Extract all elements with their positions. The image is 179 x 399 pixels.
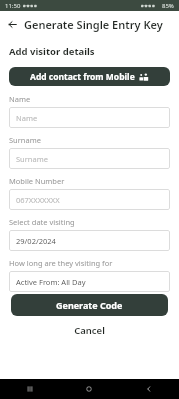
staticText: Generate Code bbox=[56, 299, 123, 311]
button[interactable]: Recents bbox=[0, 379, 59, 399]
staticText: Surname bbox=[16, 154, 48, 164]
staticText: Name bbox=[9, 94, 31, 104]
button[interactable]: Generate Code bbox=[11, 294, 168, 316]
staticText: Select date visiting bbox=[9, 217, 75, 227]
button[interactable]: 29/02/2024 bbox=[9, 230, 170, 251]
button[interactable]: Active From: All Day bbox=[9, 271, 170, 292]
button[interactable]: Surname bbox=[9, 148, 170, 169]
staticText: Add contact from Mobile bbox=[30, 71, 135, 83]
button[interactable]: Name bbox=[9, 107, 170, 128]
button[interactable]: Home bbox=[59, 379, 119, 399]
button[interactable]: Add contact from Mobile bbox=[9, 67, 170, 86]
button[interactable]: Back bbox=[0, 11, 24, 37]
staticText: Cancel bbox=[74, 324, 105, 337]
staticText: 29/02/2024 bbox=[16, 236, 56, 246]
staticText: Mobile Number bbox=[9, 176, 65, 186]
staticText: Active From: All Day bbox=[16, 277, 86, 287]
staticText: 067XXXXXXX bbox=[16, 195, 60, 205]
staticText: Surname bbox=[9, 135, 41, 145]
staticText: 11:50 bbox=[5, 2, 21, 10]
button[interactable]: Back bbox=[119, 379, 179, 399]
staticText: Add visitor details bbox=[9, 45, 95, 58]
staticText: 85% bbox=[162, 2, 174, 10]
staticText: Generate Single Entry Key bbox=[24, 17, 163, 32]
button[interactable]: 067XXXXXXX bbox=[9, 189, 170, 210]
staticText: How long are they visiting for bbox=[9, 258, 113, 268]
staticText: Name bbox=[16, 113, 38, 123]
button[interactable]: Cancel bbox=[9, 323, 170, 337]
